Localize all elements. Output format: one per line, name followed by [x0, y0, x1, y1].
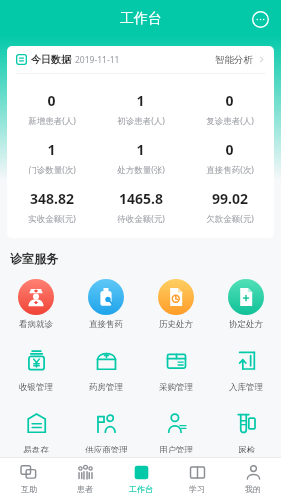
staticText: 实收金额(元)	[28, 213, 76, 225]
button[interactable]: 入库管理	[211, 338, 281, 397]
button[interactable]: 工作台	[113, 458, 169, 500]
staticText: 复诊患者(人)	[206, 115, 254, 127]
button[interactable]: 我的	[225, 458, 281, 500]
button[interactable]: 1	[7, 140, 96, 176]
button[interactable]: 348.82	[7, 189, 96, 225]
staticText: 智能分析	[215, 54, 253, 66]
staticText: 待收金额(元)	[117, 213, 165, 225]
staticText: 处方数量(张)	[117, 164, 165, 176]
staticText: 工作台	[129, 484, 153, 494]
button[interactable]: 采购管理	[141, 338, 211, 397]
staticText: 0	[225, 91, 234, 110]
button[interactable]: 互助	[0, 458, 57, 500]
staticText: 门诊数量(次)	[28, 164, 76, 176]
button[interactable]: 0	[185, 91, 274, 127]
staticText: 采购管理	[159, 382, 193, 393]
staticText: 348.82	[30, 189, 74, 208]
staticText: 0	[225, 140, 234, 159]
staticText: 患者	[77, 484, 93, 494]
staticText: 诊室服务	[10, 251, 58, 266]
staticText: 看病就诊	[19, 319, 53, 330]
button[interactable]: 99.02	[185, 189, 274, 225]
staticText: 1	[47, 140, 56, 159]
staticText: 收银管理	[19, 382, 53, 393]
staticText: 学习	[189, 484, 205, 494]
button[interactable]: 1	[96, 91, 185, 127]
staticText: 互助	[21, 484, 37, 494]
staticText: 协定处方	[229, 319, 263, 330]
staticText: 今日数据	[31, 53, 71, 66]
button[interactable]: 用户管理	[141, 401, 211, 457]
button[interactable]: 易盘存	[0, 401, 71, 457]
button[interactable]: 1	[96, 140, 185, 176]
staticText: 直接售药(次)	[206, 164, 254, 176]
button[interactable]: 看病就诊	[0, 275, 71, 334]
staticText: 新增患者(人)	[28, 115, 76, 127]
button[interactable]: 学习	[169, 458, 225, 500]
button[interactable]: 协定处方	[211, 275, 281, 334]
staticText: 1	[136, 140, 145, 159]
staticText: 用户管理	[159, 445, 193, 453]
button[interactable]: 直接售药	[71, 275, 141, 334]
button[interactable]: Messages	[248, 7, 272, 31]
staticText: 供应商管理	[85, 445, 128, 453]
staticText: 尿检	[238, 445, 255, 453]
staticText: 欠款金额(元)	[206, 213, 254, 225]
staticText: 入库管理	[229, 382, 263, 393]
staticText: 初诊患者(人)	[117, 115, 165, 127]
button[interactable]: 1465.8	[96, 189, 185, 225]
staticText: 2019-11-11	[75, 54, 120, 66]
staticText: 1	[136, 91, 145, 110]
staticText: 历史处方	[159, 319, 193, 330]
button[interactable]: 供应商管理	[71, 401, 141, 457]
staticText: 我的	[245, 484, 261, 494]
staticText: 易盘存	[23, 445, 49, 453]
button[interactable]: 药房管理	[71, 338, 141, 397]
button[interactable]: 0	[185, 140, 274, 176]
button[interactable]: 历史处方	[141, 275, 211, 334]
staticText: 药房管理	[89, 382, 123, 393]
staticText: 直接售药	[89, 319, 123, 330]
button[interactable]: 尿检	[211, 401, 281, 457]
button[interactable]: 收银管理	[0, 338, 71, 397]
button[interactable]: 患者	[57, 458, 113, 500]
button[interactable]: 0	[7, 91, 96, 127]
staticText: 1465.8	[119, 189, 163, 208]
staticText: 工作台	[120, 10, 162, 28]
button[interactable]: 今日数据	[7, 46, 274, 73]
staticText: 99.02	[212, 189, 248, 208]
staticText: 0	[47, 91, 56, 110]
